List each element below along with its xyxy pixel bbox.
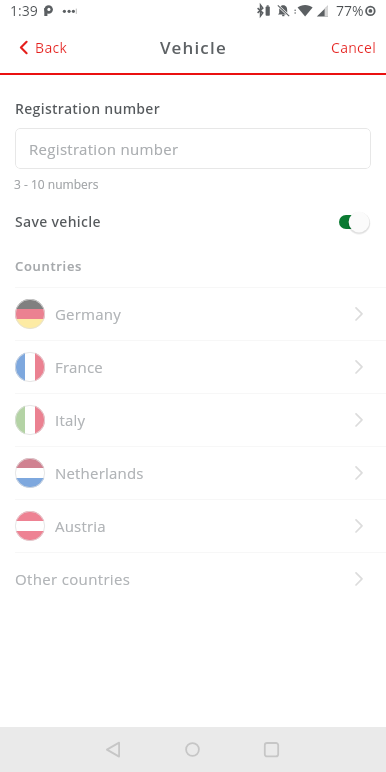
button[interactable]: Save vehicle bbox=[0, 205, 386, 238]
staticText: Netherlands bbox=[55, 463, 144, 483]
staticText: Germany bbox=[55, 304, 121, 324]
button[interactable]: Netherlands bbox=[0, 447, 386, 499]
staticText: Back bbox=[35, 38, 68, 57]
button[interactable]: Other countries bbox=[0, 553, 386, 605]
staticText: Registration number bbox=[15, 99, 161, 118]
button[interactable]: Cancel bbox=[319, 25, 386, 70]
button[interactable]: Italy bbox=[0, 394, 386, 446]
button[interactable]: Austria bbox=[0, 500, 386, 552]
staticText: 1:39 bbox=[10, 1, 38, 20]
staticText: 3 - 10 numbers bbox=[14, 176, 99, 192]
button[interactable]: Registration number bbox=[15, 128, 371, 169]
staticText: Registration number bbox=[29, 139, 179, 159]
staticText: Cancel bbox=[331, 38, 377, 57]
staticText: Italy bbox=[55, 410, 86, 430]
staticText: France bbox=[55, 357, 103, 377]
staticText: Vehicle bbox=[160, 36, 227, 59]
button[interactable]: Recent apps bbox=[250, 727, 293, 772]
button[interactable]: Save vehicle bbox=[338, 210, 370, 234]
staticText: 77% bbox=[336, 1, 364, 20]
staticText: Austria bbox=[55, 516, 106, 536]
button[interactable]: Germany bbox=[0, 288, 386, 340]
button[interactable]: Back bbox=[92, 727, 135, 772]
button[interactable]: Home bbox=[171, 727, 214, 772]
button[interactable]: France bbox=[0, 341, 386, 393]
staticText: Other countries bbox=[15, 569, 131, 589]
button[interactable]: Back bbox=[0, 25, 80, 70]
staticText: Countries bbox=[15, 257, 83, 275]
staticText: Save vehicle bbox=[15, 212, 101, 231]
